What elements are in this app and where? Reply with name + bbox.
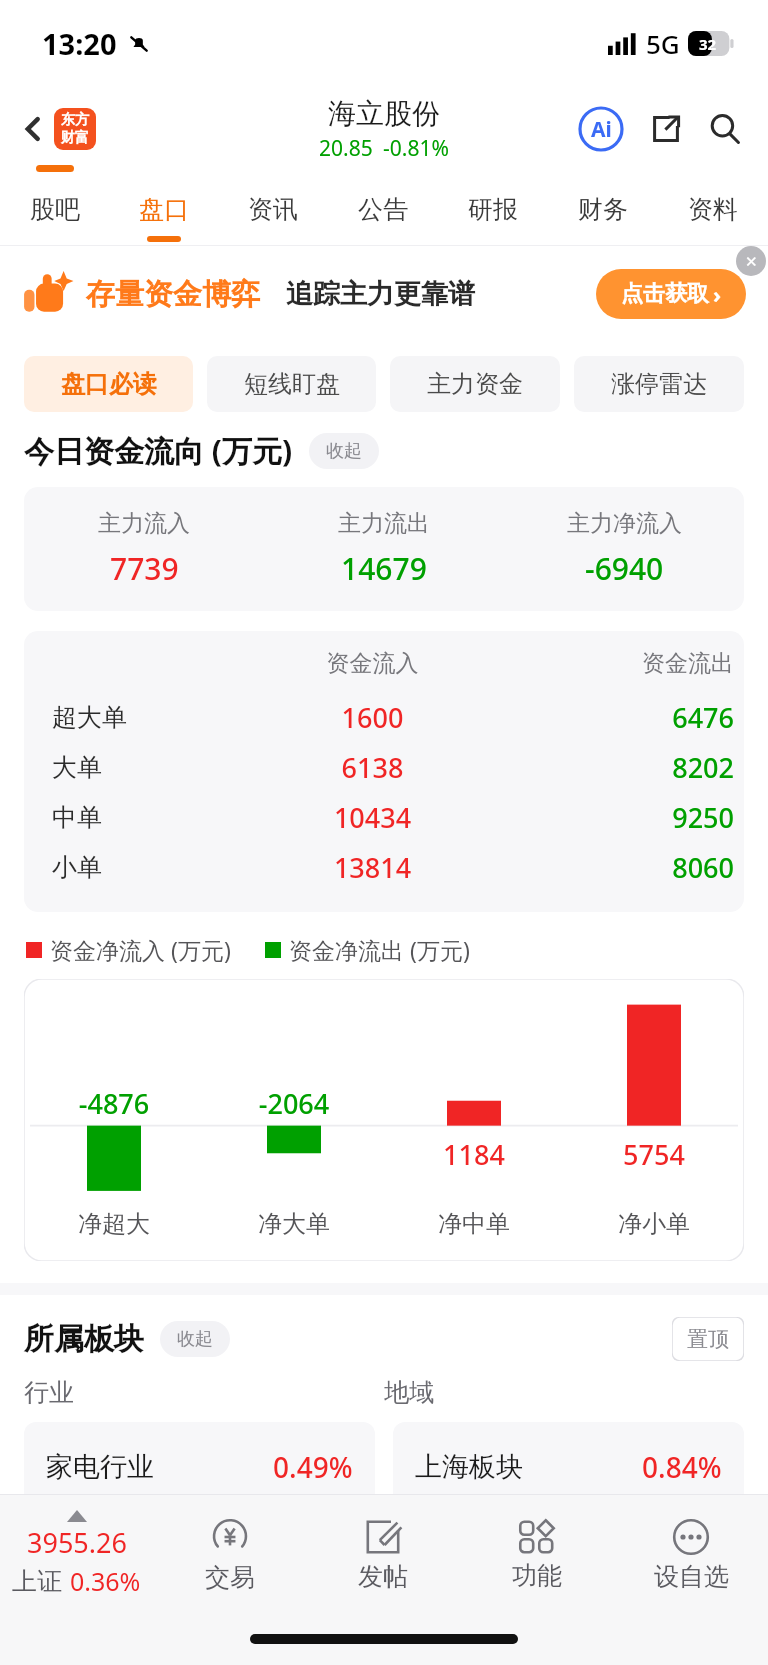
staticText: 收起	[177, 1328, 213, 1351]
button[interactable]: AI assistant	[578, 106, 624, 152]
staticText: 股吧	[30, 194, 80, 225]
staticText: 上证	[12, 1566, 62, 1597]
staticText: 主力流入	[98, 509, 190, 538]
staticText: 资讯	[248, 194, 298, 225]
staticText: Ai	[591, 115, 612, 144]
staticText: 短线盯盘	[244, 369, 340, 399]
staticText: 20.85	[319, 134, 373, 163]
staticText: -6940	[585, 548, 664, 589]
button[interactable]: 资料	[658, 172, 768, 246]
staticText: 中单	[52, 802, 252, 833]
staticText: 交易	[205, 1562, 255, 1593]
staticText: 研报	[468, 194, 518, 225]
staticText: 上海板块	[415, 1450, 523, 1484]
staticText: 盘口	[139, 194, 189, 225]
staticText: -4876	[24, 1085, 204, 1122]
staticText: 1184	[384, 1136, 564, 1173]
button[interactable]: -4876	[24, 979, 744, 1261]
staticText: 净中单	[384, 1209, 564, 1239]
button[interactable]: 超大单	[24, 692, 744, 742]
button[interactable]: 发帖	[306, 1495, 460, 1613]
staticText: 8202	[493, 749, 734, 786]
button[interactable]: 盘口必读	[24, 356, 193, 412]
staticText: 财务	[578, 194, 628, 225]
staticText: 设自选	[654, 1561, 729, 1592]
staticText: 主力资金	[427, 369, 523, 399]
staticText: 主力净流入	[567, 509, 682, 538]
button[interactable]: 研报	[438, 172, 548, 246]
staticText: 今日资金流向 (万元)	[24, 430, 293, 471]
staticText: 5G	[646, 26, 680, 61]
button[interactable]: Back	[14, 102, 102, 156]
button[interactable]: 资讯	[218, 172, 328, 246]
staticText: 9250	[493, 799, 734, 836]
staticText: 行业	[24, 1377, 384, 1408]
button[interactable]: 短线盯盘	[207, 356, 376, 412]
button[interactable]: 大单	[24, 742, 744, 792]
button[interactable]: 交易	[153, 1495, 306, 1613]
staticText: 功能	[512, 1560, 562, 1591]
staticText: 小单	[52, 852, 252, 883]
button[interactable]: Search	[704, 108, 746, 150]
staticText: 发帖	[358, 1561, 408, 1592]
staticText: ›	[713, 279, 722, 309]
button[interactable]: 财务	[548, 172, 658, 246]
button[interactable]: 公告	[328, 172, 438, 246]
button[interactable]: Close ad	[736, 246, 766, 276]
button[interactable]: 主力流入	[24, 487, 744, 611]
staticText: 家电行业	[46, 1450, 154, 1484]
button[interactable]: 盘口	[109, 172, 218, 246]
staticText: 点击获取	[621, 280, 709, 308]
staticText: 涨停雷达	[611, 369, 707, 399]
staticText: 收起	[326, 440, 362, 463]
button[interactable]: 中单	[24, 792, 744, 842]
staticText: 净大单	[204, 1209, 384, 1239]
staticText: 5754	[564, 1136, 744, 1173]
staticText: 6476	[493, 699, 734, 736]
staticText: 财富	[61, 129, 89, 147]
staticText: 13814	[252, 849, 493, 886]
button[interactable]: 收起	[309, 433, 379, 469]
button[interactable]: 涨停雷达	[574, 356, 744, 412]
button[interactable]: 3955.26	[0, 1495, 153, 1613]
staticText: 超大单	[52, 702, 252, 733]
staticText: 净小单	[564, 1209, 744, 1239]
button[interactable]: 收起	[160, 1321, 230, 1357]
button[interactable]: 功能	[460, 1495, 614, 1613]
staticText: 主力流出	[338, 509, 430, 538]
button[interactable]: 主力资金	[390, 356, 560, 412]
staticText: 8060	[493, 849, 734, 886]
staticText: ✕	[745, 253, 758, 270]
staticText: 10434	[252, 799, 493, 836]
button[interactable]: Share	[646, 109, 686, 149]
button[interactable]: 小单	[24, 842, 744, 892]
staticText: 资金流入	[252, 649, 493, 678]
staticText: 0.84%	[642, 1448, 722, 1486]
staticText: 资料	[688, 194, 738, 225]
staticText: 0.36%	[70, 1564, 141, 1598]
staticText: 所属板块	[24, 1320, 144, 1358]
button[interactable]: 上海板块	[393, 1422, 744, 1512]
button[interactable]: 点击获取	[596, 269, 746, 319]
staticText: 地域	[384, 1377, 744, 1408]
staticText: 1600	[252, 699, 493, 736]
button[interactable]: 设自选	[614, 1495, 768, 1613]
button[interactable]: 存量资金博弈	[0, 246, 768, 342]
button[interactable]: 置顶	[672, 1317, 744, 1361]
button[interactable]: 股吧	[0, 172, 109, 246]
staticText: 32	[699, 34, 717, 54]
staticText: 14679	[341, 548, 427, 589]
staticText: 7739	[110, 548, 179, 589]
staticText: 追踪主力更靠谱	[286, 277, 475, 311]
staticText: 净超大	[24, 1209, 204, 1239]
staticText: 6138	[252, 749, 493, 786]
staticText: 大单	[52, 752, 252, 783]
staticText: 东方	[61, 111, 89, 129]
staticText: 资金净流出 (万元)	[289, 934, 470, 965]
button[interactable]: 家电行业	[24, 1422, 375, 1512]
staticText: -2064	[204, 1085, 384, 1122]
staticText: -0.81%	[383, 134, 449, 163]
staticText: 3955.26	[27, 1524, 127, 1561]
staticText: 公告	[358, 194, 408, 225]
staticText: 资金流出	[493, 649, 734, 678]
